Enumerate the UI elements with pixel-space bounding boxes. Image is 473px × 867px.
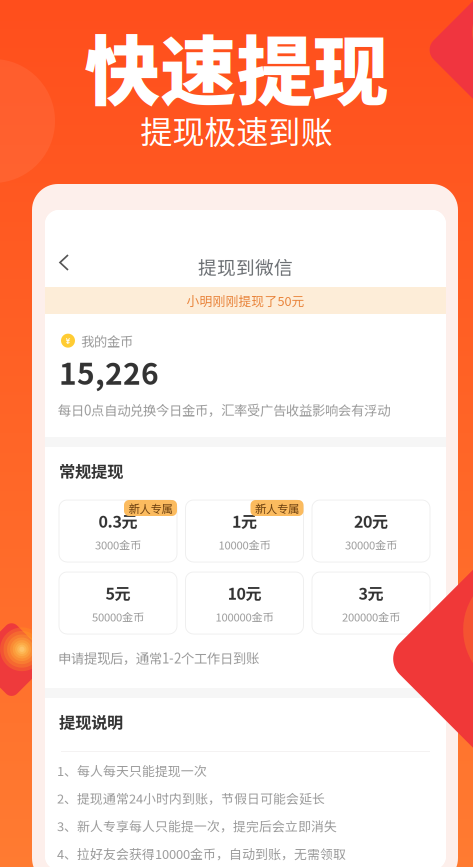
staticText: ¥ xyxy=(65,335,70,346)
staticText: 新人专属 xyxy=(128,500,172,516)
staticText: 快速提现 xyxy=(84,11,388,121)
staticText: 提现极速到账 xyxy=(140,107,332,153)
staticText: 3000金币 xyxy=(95,536,141,553)
staticText: 5元 xyxy=(105,581,130,604)
staticText: 15,226 xyxy=(59,350,159,393)
staticText: 提现说明 xyxy=(59,710,123,734)
staticText: 20元 xyxy=(354,509,388,532)
button[interactable]: 0.3元 xyxy=(59,500,177,562)
button[interactable]: 5元 xyxy=(59,572,177,634)
staticText: 申请提现后，通常1-2个工作日到账 xyxy=(58,648,259,667)
staticText: 3元 xyxy=(358,581,383,604)
staticText: 0.3元 xyxy=(98,509,137,532)
staticText: 10000金币 xyxy=(218,536,270,553)
button[interactable]: Back xyxy=(47,242,79,282)
staticText: 2、提现通常24小时内到账，节假日可能会延长 xyxy=(57,789,325,807)
staticText: 每日0点自动兑换今日金币，汇率受广告收益影响会有浮动 xyxy=(58,400,390,419)
staticText: 小明刚刚提现了50元 xyxy=(186,291,304,310)
staticText: 100000金币 xyxy=(215,608,273,625)
staticText: 1元 xyxy=(232,509,257,532)
button[interactable]: 1元 xyxy=(185,500,303,562)
staticText: 50000金币 xyxy=(92,608,144,625)
staticText: 3、新人专享每人只能提一次，提完后会立即消失 xyxy=(57,816,337,835)
staticText: 200000金币 xyxy=(342,608,400,625)
staticText: 1、每人每天只能提现一次 xyxy=(57,761,207,780)
staticText: 提现到微信 xyxy=(198,253,293,280)
staticText: 4、拉好友会获得10000金币，自动到账，无需领取 xyxy=(57,844,346,862)
button[interactable]: 3元 xyxy=(312,572,430,634)
staticText: 10元 xyxy=(227,581,261,604)
staticText: 我的金币 xyxy=(81,331,133,350)
staticText: 30000金币 xyxy=(345,536,397,553)
button[interactable]: 10元 xyxy=(185,572,303,634)
button[interactable]: 20元 xyxy=(312,500,430,562)
staticText: 常规提现 xyxy=(59,459,123,483)
staticText: 新人专属 xyxy=(255,500,299,516)
